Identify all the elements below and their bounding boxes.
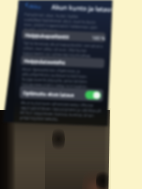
button[interactable]	[0, 0, 142, 189]
